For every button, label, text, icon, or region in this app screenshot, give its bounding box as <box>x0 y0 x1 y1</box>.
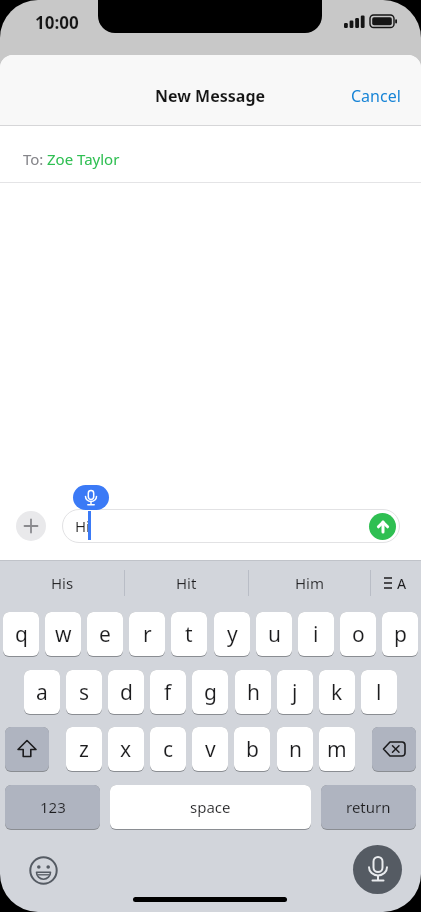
staticText: d <box>120 678 133 707</box>
button[interactable]: m <box>319 727 355 772</box>
button[interactable]: Hit <box>146 568 226 598</box>
staticText: z <box>79 735 89 764</box>
staticText: e <box>99 620 111 649</box>
button[interactable] <box>5 727 49 772</box>
button[interactable]: f <box>150 670 186 715</box>
button[interactable] <box>353 845 402 894</box>
button[interactable]: Cancel <box>345 79 407 113</box>
button[interactable]: l <box>361 670 397 715</box>
staticText: y <box>227 620 238 649</box>
staticText: p <box>394 620 407 649</box>
staticText: o <box>352 620 365 649</box>
staticText: Zoe Taylor <box>47 149 120 169</box>
staticText: Hi <box>75 516 90 536</box>
button[interactable]: Him <box>270 568 350 598</box>
button[interactable]: space <box>110 785 311 830</box>
button[interactable] <box>369 513 396 540</box>
button[interactable]: e <box>87 612 123 657</box>
button[interactable]: u <box>256 612 292 657</box>
staticText: Hit <box>176 573 197 593</box>
staticText: h <box>247 678 260 707</box>
button[interactable]: y <box>214 612 250 657</box>
button[interactable]: n <box>277 727 313 772</box>
button[interactable]: A <box>378 568 412 598</box>
button[interactable]: i <box>298 612 334 657</box>
button[interactable]: j <box>277 670 313 715</box>
staticText: His <box>51 573 74 593</box>
staticText: w <box>55 620 72 649</box>
staticText: m <box>327 735 347 764</box>
staticText: v <box>205 735 216 764</box>
staticText: j <box>292 678 298 707</box>
staticText: g <box>204 678 217 707</box>
button[interactable]: x <box>108 727 144 772</box>
button[interactable]: a <box>24 670 60 715</box>
button[interactable]: b <box>234 727 270 772</box>
staticText: r <box>143 620 152 649</box>
staticText: New Message <box>155 85 266 107</box>
button[interactable]: h <box>235 670 271 715</box>
staticText: b <box>246 735 259 764</box>
button[interactable]: r <box>129 612 165 657</box>
button[interactable]: return <box>321 785 416 830</box>
button[interactable]: o <box>340 612 376 657</box>
button[interactable]: z <box>66 727 102 772</box>
staticText: a <box>36 678 48 707</box>
staticText: q <box>15 620 28 649</box>
button[interactable]: 123 <box>5 785 100 830</box>
button[interactable]: d <box>108 670 144 715</box>
staticText: A <box>397 574 407 593</box>
button[interactable] <box>372 727 416 772</box>
staticText: i <box>313 620 319 649</box>
button[interactable]: p <box>382 612 418 657</box>
staticText: return <box>346 797 391 817</box>
staticText: k <box>331 678 343 707</box>
button[interactable]: g <box>192 670 228 715</box>
staticText: Cancel <box>351 85 401 107</box>
button[interactable]: t <box>171 612 207 657</box>
button[interactable]: His <box>22 568 102 598</box>
staticText: t <box>185 620 193 649</box>
button[interactable] <box>16 511 46 541</box>
button[interactable] <box>29 856 58 885</box>
button[interactable]: s <box>66 670 102 715</box>
staticText: 10:00 <box>35 11 79 34</box>
button[interactable]: q <box>3 612 39 657</box>
staticText: To: <box>23 149 44 169</box>
staticText: n <box>289 735 302 764</box>
button[interactable]: To: <box>0 126 421 182</box>
staticText: f <box>164 678 172 707</box>
staticText: c <box>163 735 174 764</box>
staticText: x <box>120 735 132 764</box>
staticText: u <box>268 620 281 649</box>
staticText: l <box>376 678 382 707</box>
button[interactable]: v <box>192 727 228 772</box>
staticText: 123 <box>40 797 66 817</box>
staticText: space <box>190 797 231 817</box>
button[interactable]: w <box>45 612 81 657</box>
staticText: Him <box>295 573 325 593</box>
staticText: s <box>79 678 90 707</box>
button[interactable]: c <box>150 727 186 772</box>
button[interactable]: k <box>319 670 355 715</box>
